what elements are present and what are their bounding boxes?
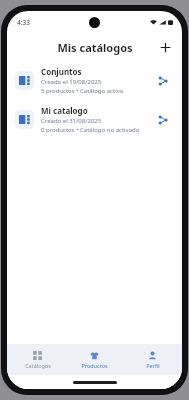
staticText: Conjuntos [41,66,82,77]
staticText: Productos [81,362,108,369]
button[interactable]: Perfil [125,348,180,372]
staticText: 0 productos • Catálogo no activado [41,126,140,134]
button[interactable]: Mi catalogo [7,100,182,139]
staticText: Perfil [146,362,160,369]
button[interactable]: Share [152,70,174,92]
button[interactable]: Share [152,109,174,131]
staticText: 4:33 [17,18,30,27]
staticText: Creado el 31/08/2025 [41,117,102,125]
staticText: Mi catalogo [41,105,88,116]
staticText: Mis catálogos [57,40,133,55]
button[interactable]: Add catalog [154,36,176,58]
button[interactable]: Catálogos [10,348,65,372]
button[interactable]: Productos [67,348,122,372]
staticText: Creado el 19/08/2025 [41,78,102,86]
button[interactable]: Conjuntos [7,61,182,100]
staticText: Catálogos [25,362,51,369]
staticText: 5 productos • Catálogo activo [41,87,124,95]
